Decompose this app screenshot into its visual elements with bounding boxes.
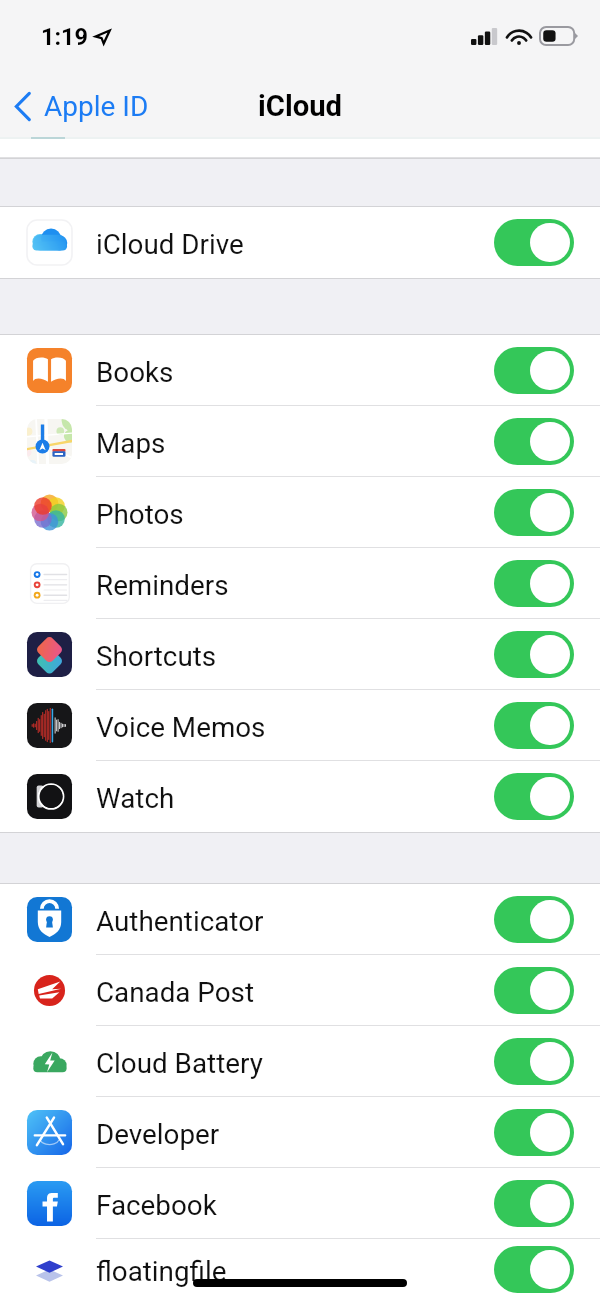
button[interactable]: Maps — [0, 406, 600, 477]
staticText: Shortcuts — [96, 640, 494, 673]
staticText: Books — [96, 356, 494, 389]
button[interactable]: Facebook — [0, 1168, 600, 1239]
staticText: floatingfile — [96, 1255, 494, 1288]
button[interactable]: Shortcuts — [0, 619, 600, 690]
button[interactable]: Toggle on — [494, 702, 574, 749]
staticText: Canada Post — [96, 976, 494, 1009]
staticText: Cloud Battery — [96, 1047, 494, 1080]
button[interactable]: Toggle on — [494, 219, 574, 266]
staticText: Developer — [96, 1118, 494, 1151]
staticText: iCloud Drive — [96, 228, 494, 261]
button[interactable]: Toggle on — [494, 896, 574, 943]
button[interactable]: Cloud Battery — [0, 1026, 600, 1097]
button[interactable]: Authenticator — [0, 884, 600, 955]
button[interactable]: Watch — [0, 761, 600, 832]
staticText: 1:19 — [41, 23, 89, 51]
button[interactable]: floatingfile — [0, 1239, 600, 1299]
button[interactable]: Apple ID — [14, 86, 149, 123]
button[interactable]: Toggle on — [494, 489, 574, 536]
staticText: iCloud — [258, 89, 343, 123]
button[interactable]: Reminders — [0, 548, 600, 619]
staticText: Voice Memos — [96, 711, 494, 744]
button[interactable]: Books — [0, 335, 600, 406]
button[interactable]: Toggle on — [494, 631, 574, 678]
staticText: Apple ID — [44, 90, 149, 123]
staticText: Watch — [96, 782, 494, 815]
button[interactable]: Toggle on — [494, 1180, 574, 1227]
button[interactable]: Photos — [0, 477, 600, 548]
button[interactable]: Developer — [0, 1097, 600, 1168]
button[interactable]: Voice Memos — [0, 690, 600, 761]
button[interactable]: Toggle on — [494, 773, 574, 820]
staticText: Facebook — [96, 1189, 494, 1222]
staticText: Authenticator — [96, 905, 494, 938]
button[interactable]: Canada Post — [0, 955, 600, 1026]
button[interactable]: Toggle on — [494, 1038, 574, 1085]
button[interactable]: iCloud Drive — [0, 207, 600, 278]
button[interactable]: Toggle on — [494, 347, 574, 394]
staticText: Maps — [96, 427, 494, 460]
button[interactable]: Toggle on — [494, 560, 574, 607]
button[interactable]: Toggle on — [494, 1109, 574, 1156]
button[interactable]: Toggle on — [494, 418, 574, 465]
staticText: Photos — [96, 498, 494, 531]
button[interactable]: Toggle on — [494, 1246, 574, 1293]
button[interactable]: Toggle on — [494, 967, 574, 1014]
staticText: Reminders — [96, 569, 494, 602]
